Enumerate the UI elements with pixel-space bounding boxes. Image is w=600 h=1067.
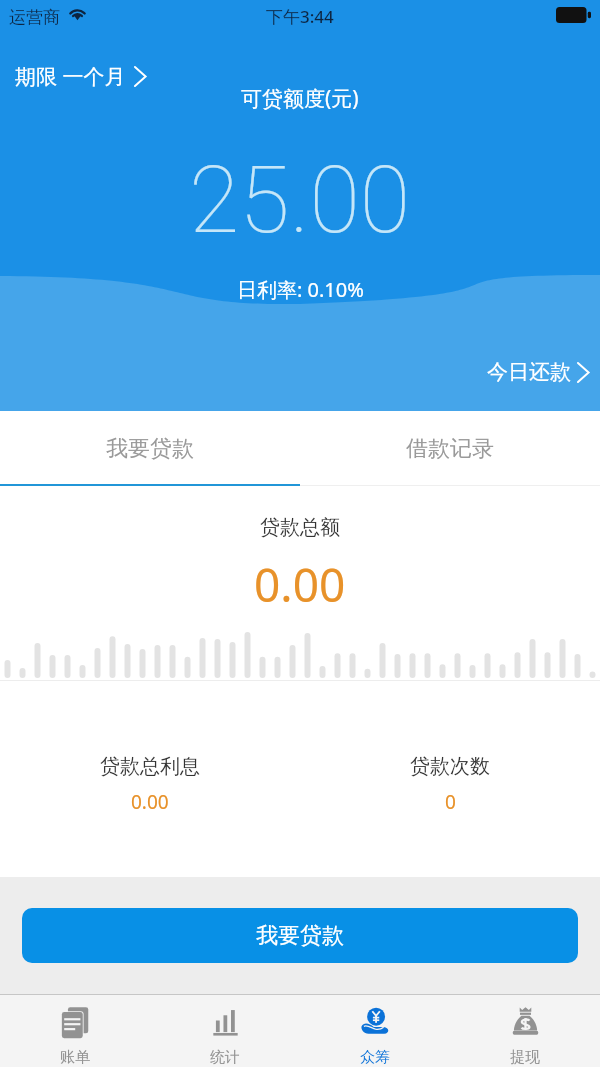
button[interactable]: 借款记录 <box>300 411 600 486</box>
button[interactable]: 统计 <box>150 995 300 1067</box>
staticText: 期限 一个月 <box>15 62 126 91</box>
button[interactable]: 众筹 <box>300 995 450 1067</box>
staticText: 我要贷款 <box>106 435 194 463</box>
button[interactable]: 我要贷款 <box>0 411 300 486</box>
staticText: 贷款次数 <box>410 754 490 779</box>
button[interactable]: 账单 <box>0 995 150 1067</box>
button[interactable]: 我要贷款 <box>22 908 578 963</box>
staticText: 贷款总利息 <box>100 754 200 779</box>
staticText: 我要贷款 <box>256 922 344 950</box>
button[interactable]: 今日还款 <box>487 359 590 385</box>
staticText: 今日还款 <box>487 359 571 385</box>
staticText: 提现 <box>510 1048 540 1067</box>
staticText: 众筹 <box>360 1048 390 1067</box>
staticText: 日利率: 0.10% <box>237 276 364 303</box>
staticText: 账单 <box>60 1048 90 1067</box>
staticText: 运营商 <box>9 7 60 28</box>
staticText: 0.00 <box>254 553 346 616</box>
staticText: 借款记录 <box>406 435 494 463</box>
staticText: 可贷额度(元) <box>241 84 359 113</box>
button[interactable]: 期限 一个月 <box>15 62 147 91</box>
staticText: 统计 <box>210 1048 240 1067</box>
staticText: 0.00 <box>131 789 169 815</box>
staticText: 0 <box>445 789 456 815</box>
staticText: 25.00 <box>189 147 411 255</box>
staticText: 下午3:44 <box>266 5 334 28</box>
staticText: 贷款总额 <box>260 515 340 540</box>
button[interactable]: 提现 <box>450 995 600 1067</box>
